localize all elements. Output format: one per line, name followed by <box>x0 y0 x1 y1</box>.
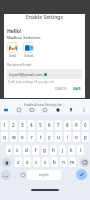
staticText: It will keep settings till you sign out. <box>8 80 55 84</box>
staticText: Enable Settings <box>26 14 63 21</box>
staticText: ?123 <box>3 174 9 177</box>
staticText: r <box>31 134 33 140</box>
staticText: z <box>17 159 20 165</box>
button[interactable]: Symbols <box>1 170 11 180</box>
staticText: 4 <box>30 122 33 128</box>
staticText: CANCEL <box>55 87 68 91</box>
staticText: e <box>21 134 24 140</box>
button[interactable]: Enter <box>76 169 87 180</box>
button[interactable]: q <box>1 132 8 142</box>
button[interactable]: Microphone <box>67 106 75 114</box>
button[interactable]: Outlook <box>23 42 34 53</box>
button[interactable]: 7 <box>55 120 62 130</box>
staticText: m <box>70 159 75 165</box>
staticText: l <box>80 147 82 153</box>
staticText: t <box>40 134 42 140</box>
button[interactable]: z <box>15 157 22 167</box>
staticText: 9 <box>75 122 78 128</box>
button[interactable]: h <box>50 145 57 155</box>
button[interactable]: Translate <box>41 106 49 114</box>
staticText: 6 <box>48 122 51 128</box>
button[interactable]: e <box>19 132 26 142</box>
button[interactable]: k <box>68 145 75 155</box>
staticText: n <box>62 159 65 165</box>
button[interactable]: english <box>27 170 61 180</box>
button[interactable]: o <box>73 132 80 142</box>
button[interactable]: 5 <box>37 120 44 130</box>
button[interactable]: y <box>46 132 53 142</box>
button[interactable]: myself@gmail.com <box>7 69 82 79</box>
staticText: 7 <box>57 122 60 128</box>
staticText: Hello! <box>7 28 22 35</box>
staticText: x <box>26 159 29 165</box>
button[interactable]: b <box>51 157 58 167</box>
button[interactable]: 2 <box>10 120 17 130</box>
staticText: b <box>53 159 56 165</box>
button[interactable]: Stickers <box>15 106 23 114</box>
button[interactable]: SAVE <box>71 85 83 93</box>
button[interactable]: Shift <box>2 158 11 167</box>
button[interactable]: Clipboard <box>54 106 62 114</box>
staticText: w <box>12 134 16 140</box>
staticText: p <box>84 134 87 140</box>
button[interactable]: 0 <box>82 120 89 130</box>
staticText: 5 <box>39 122 42 128</box>
button[interactable]: 4 <box>28 120 35 130</box>
staticText: s <box>16 147 19 153</box>
button[interactable]: n <box>60 157 67 167</box>
button[interactable]: x <box>24 157 31 167</box>
staticText: g <box>43 147 46 153</box>
button[interactable]: Gboard <box>2 106 10 114</box>
button[interactable]: d <box>23 145 30 155</box>
staticText: k <box>70 147 73 153</box>
staticText: SAVE <box>73 87 81 91</box>
button[interactable]: v <box>42 157 49 167</box>
button[interactable]: m <box>69 157 76 167</box>
staticText: i <box>67 134 69 140</box>
button[interactable]: Emoji <box>19 169 26 181</box>
staticText: v <box>44 159 47 165</box>
staticText: q <box>3 134 6 140</box>
staticText: o <box>75 134 78 140</box>
button[interactable]: 6 <box>46 120 53 130</box>
button[interactable]: 1 <box>1 120 8 130</box>
staticText: a <box>8 147 11 153</box>
button[interactable]: s <box>14 145 21 155</box>
staticText: Enable Access Settings for ... <box>24 103 66 107</box>
staticText: 1 <box>3 122 6 128</box>
button[interactable]: t <box>37 132 44 142</box>
staticText: 2 <box>12 122 15 128</box>
staticText: f <box>35 147 37 153</box>
staticText: english <box>39 173 49 177</box>
button[interactable]: , <box>11 169 18 181</box>
staticText: 3 <box>21 122 24 128</box>
staticText: . <box>66 173 68 178</box>
button[interactable]: 8 <box>64 120 71 130</box>
button[interactable]: p <box>82 132 89 142</box>
staticText: c <box>35 159 38 165</box>
button[interactable]: Settings <box>80 106 88 114</box>
staticText: u <box>57 134 60 140</box>
button[interactable]: j <box>59 145 66 155</box>
staticText: j <box>62 147 64 153</box>
button[interactable]: a <box>6 145 12 155</box>
button[interactable]: r <box>28 132 35 142</box>
button[interactable]: 3 <box>19 120 26 130</box>
staticText: myself@gmail.com <box>9 72 43 77</box>
button[interactable]: i <box>64 132 71 142</box>
staticText: h <box>52 147 55 153</box>
button[interactable]: u <box>55 132 62 142</box>
button[interactable]: 9 <box>73 120 80 130</box>
button[interactable]: Backspace <box>80 158 89 167</box>
staticText: Gmail <box>9 54 17 58</box>
button[interactable]: Gmail <box>7 42 18 53</box>
staticText: 0 <box>84 122 87 128</box>
button[interactable]: g <box>41 145 48 155</box>
button[interactable]: w <box>10 132 17 142</box>
button[interactable]: GIF <box>28 106 36 114</box>
button[interactable]: CANCEL <box>53 85 70 93</box>
button[interactable]: l <box>77 145 84 155</box>
button[interactable]: c <box>33 157 40 167</box>
button[interactable]: f <box>32 145 39 155</box>
